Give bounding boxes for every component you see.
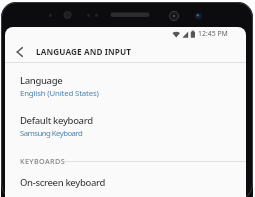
staticText: Samsung Keyboard <box>20 128 83 139</box>
staticText: KEYBOARDS <box>20 156 65 166</box>
button[interactable]: Default keyboard <box>5 107 246 143</box>
button[interactable]: Language <box>5 67 246 103</box>
staticText: English (United States) <box>20 88 99 99</box>
staticText: Default keyboard <box>20 114 93 127</box>
button[interactable] <box>9 43 31 61</box>
staticText: LANGUAGE AND INPUT <box>36 46 132 57</box>
staticText: Language <box>20 74 63 87</box>
button[interactable]: On-screen keyboard <box>5 170 246 197</box>
staticText: 12:45 PM <box>198 29 228 38</box>
staticText: On-screen keyboard <box>20 176 106 189</box>
